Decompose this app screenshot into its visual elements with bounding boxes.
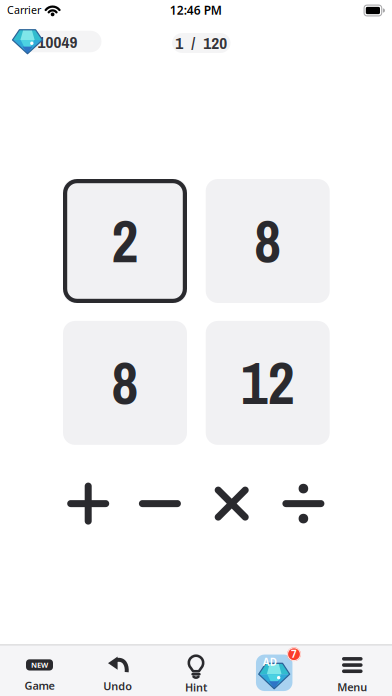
button[interactable]: Divide bbox=[280, 481, 326, 527]
button[interactable]: Subtract bbox=[137, 481, 183, 527]
staticText: NEW bbox=[31, 660, 48, 670]
staticText: 7 bbox=[291, 647, 297, 661]
staticText: 12:46 PM bbox=[170, 2, 222, 18]
staticText: Menu bbox=[337, 680, 367, 694]
staticText: 10049 bbox=[37, 30, 77, 53]
staticText: AD bbox=[263, 655, 277, 669]
button[interactable]: Watch ad for gems bbox=[246, 649, 302, 696]
button[interactable]: NEW bbox=[4, 654, 74, 696]
button[interactable]: Undo bbox=[83, 653, 153, 696]
button[interactable]: 8 bbox=[63, 321, 187, 445]
staticText: Game bbox=[24, 678, 54, 693]
button[interactable]: 8 bbox=[206, 179, 330, 303]
button[interactable]: Hint bbox=[161, 651, 231, 696]
staticText: 8 bbox=[254, 201, 281, 280]
staticText: 1 / 120 bbox=[175, 31, 227, 54]
button[interactable]: 12 bbox=[206, 321, 330, 445]
staticText: 12 bbox=[241, 343, 295, 422]
staticText: 2 bbox=[111, 201, 138, 280]
button[interactable]: Add bbox=[65, 481, 111, 527]
staticText: Carrier bbox=[7, 2, 41, 17]
button[interactable]: Multiply bbox=[209, 481, 255, 527]
staticText: Hint bbox=[185, 680, 207, 695]
staticText: Undo bbox=[103, 679, 132, 693]
button[interactable]: Gems bbox=[10, 27, 114, 57]
staticText: 8 bbox=[111, 343, 138, 422]
button[interactable]: Menu bbox=[317, 654, 387, 696]
button[interactable]: 2 bbox=[63, 179, 187, 303]
